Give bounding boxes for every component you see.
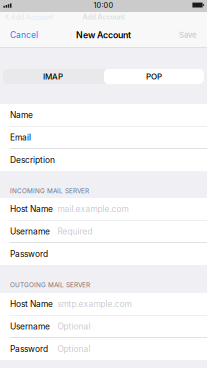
staticText: New Account: [76, 30, 131, 40]
button[interactable]: Password: [0, 338, 207, 360]
button[interactable]: Username: [0, 220, 207, 242]
staticText: Username: [10, 321, 50, 332]
staticText: Required: [57, 226, 92, 237]
button[interactable]: Username: [0, 315, 207, 337]
staticText: Optional: [57, 344, 90, 354]
button[interactable]: Host Name: [0, 293, 207, 315]
button[interactable]: Cancel: [0, 24, 52, 46]
button[interactable]: IMAP: [3, 69, 103, 84]
staticText: Add Account: [11, 13, 53, 21]
staticText: Add Account: [82, 13, 124, 21]
button[interactable]: POP: [104, 69, 204, 84]
staticText: Name: [10, 110, 33, 120]
button[interactable]: Save: [161, 24, 207, 46]
staticText: Password: [10, 249, 48, 259]
staticText: Host Name: [10, 204, 53, 214]
staticText: mail.example.com: [57, 204, 128, 214]
staticText: Description: [10, 155, 55, 165]
button[interactable]: Name: [0, 104, 207, 126]
staticText: Cancel: [10, 30, 38, 40]
staticText: Host Name: [10, 299, 53, 309]
staticText: Email: [10, 132, 31, 143]
staticText: IMAP: [43, 72, 63, 81]
staticText: OUTGOING MAIL SERVER: [10, 281, 90, 289]
staticText: smtp.example.com: [57, 299, 131, 309]
button[interactable]: Description: [0, 149, 207, 171]
staticText: INCOMING MAIL SERVER: [10, 187, 89, 195]
button[interactable]: Email: [0, 126, 207, 148]
button[interactable]: Host Name: [0, 198, 207, 220]
button[interactable]: Password: [0, 243, 207, 265]
staticText: Save: [179, 30, 197, 40]
staticText: 10:00: [93, 1, 113, 10]
staticText: Username: [10, 226, 50, 237]
staticText: Password: [10, 344, 48, 354]
staticText: POP: [146, 72, 162, 81]
staticText: Optional: [57, 321, 90, 332]
